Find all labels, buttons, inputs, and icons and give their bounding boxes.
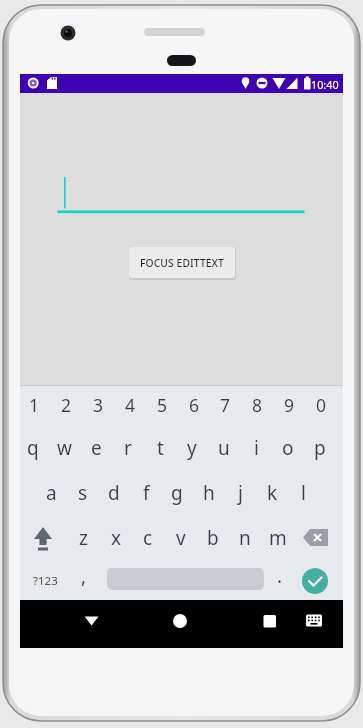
staticText: 7 [220, 393, 231, 417]
staticText: u [218, 435, 230, 461]
button[interactable]: m [262, 515, 294, 560]
staticText: v [176, 525, 186, 551]
button[interactable] [301, 606, 327, 642]
staticText: 0 [316, 393, 327, 417]
staticText: t [157, 435, 164, 461]
staticText: l [301, 480, 306, 506]
button[interactable]: z [67, 515, 99, 560]
button[interactable]: p [304, 425, 336, 470]
button[interactable]: 6 [178, 385, 210, 425]
button[interactable]: 1 [18, 385, 50, 425]
staticText: 9 [284, 393, 295, 417]
staticText: b [207, 525, 219, 551]
button[interactable]: x [100, 515, 132, 560]
button[interactable]: h [193, 470, 225, 515]
button[interactable]: 3 [82, 385, 114, 425]
staticText: z [79, 525, 88, 551]
staticText: w [57, 435, 72, 461]
staticText: r [124, 435, 132, 461]
staticText: f [143, 480, 150, 506]
staticText: FOCUS EDITTEXT [140, 256, 224, 270]
button[interactable]: d [98, 470, 130, 515]
button[interactable]: w [48, 425, 80, 470]
button[interactable]: b [197, 515, 229, 560]
staticText: 5 [157, 393, 168, 417]
staticText: p [314, 435, 326, 461]
button[interactable]: k [256, 470, 288, 515]
staticText: e [91, 435, 102, 461]
staticText: g [171, 480, 183, 506]
button[interactable]: 5 [146, 385, 178, 425]
button[interactable]: 9 [273, 385, 305, 425]
button[interactable]: c [132, 515, 164, 560]
button[interactable]: r [112, 425, 144, 470]
button[interactable]: a [35, 470, 67, 515]
staticText: 10:40 [311, 77, 339, 92]
staticText: . [277, 563, 283, 589]
button[interactable]: y [176, 425, 208, 470]
staticText: x [111, 525, 122, 551]
button[interactable]: t [144, 425, 176, 470]
button[interactable]: i [240, 425, 272, 470]
staticText: s [78, 480, 88, 506]
staticText: q [27, 435, 39, 461]
button[interactable]: e [80, 425, 112, 470]
staticText: d [108, 480, 120, 506]
staticText: m [269, 525, 287, 551]
button[interactable]: 4 [114, 385, 146, 425]
staticText: , [81, 563, 87, 589]
staticText: o [282, 435, 294, 461]
button[interactable]: 8 [241, 385, 273, 425]
button[interactable] [77, 606, 107, 642]
button[interactable] [255, 606, 285, 642]
staticText: 1 [29, 393, 40, 417]
staticText: c [143, 525, 153, 551]
button[interactable]: s [67, 470, 99, 515]
button[interactable]: j [224, 470, 256, 515]
button[interactable]: FOCUS EDITTEXT [129, 247, 235, 278]
button[interactable]: f [130, 470, 162, 515]
staticText: 6 [189, 393, 200, 417]
button[interactable]: ?123 [29, 560, 61, 602]
button[interactable]: v [165, 515, 197, 560]
staticText: h [203, 480, 215, 506]
button[interactable]: o [272, 425, 304, 470]
staticText: 2 [61, 393, 72, 417]
button[interactable]: u [208, 425, 240, 470]
staticText: i [254, 435, 259, 461]
staticText: y [187, 435, 197, 461]
button[interactable] [165, 606, 195, 642]
staticText: 8 [252, 393, 263, 417]
staticText: ?123 [33, 573, 58, 589]
button[interactable]: 2 [50, 385, 82, 425]
button[interactable]: q [17, 425, 49, 470]
staticText: 4 [125, 393, 136, 417]
button[interactable]: . [271, 555, 288, 597]
button[interactable]: , [75, 555, 92, 597]
button[interactable]: n [229, 515, 261, 560]
staticText: 3 [93, 393, 104, 417]
button[interactable]: g [161, 470, 193, 515]
button[interactable]: 0 [305, 385, 337, 425]
staticText: a [46, 480, 57, 506]
staticText: n [239, 525, 251, 551]
staticText: j [238, 480, 243, 506]
button[interactable]: 7 [209, 385, 241, 425]
button[interactable]: l [287, 470, 319, 515]
staticText: k [267, 480, 278, 506]
